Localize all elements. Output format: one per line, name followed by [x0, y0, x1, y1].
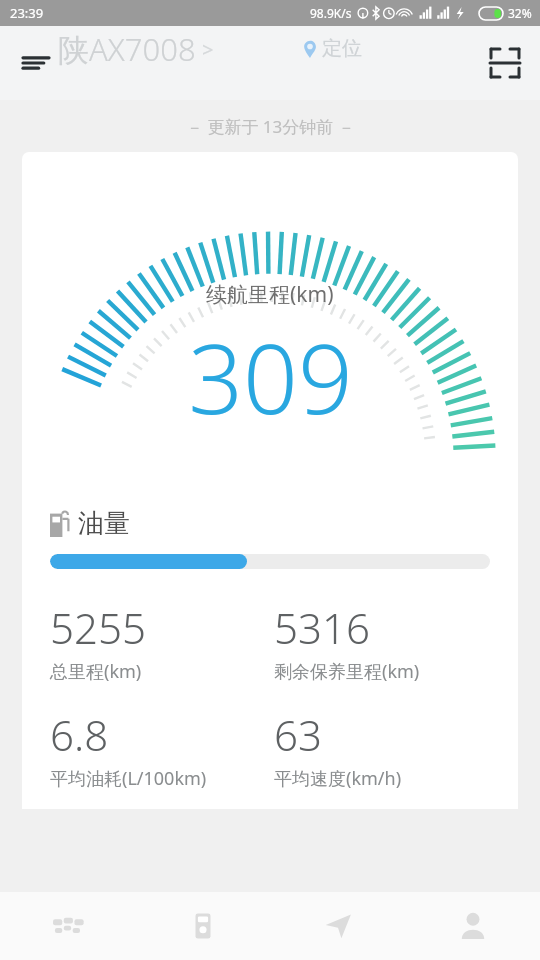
- staticText: 309: [188, 311, 353, 442]
- staticText: 98.9K/s: [310, 5, 352, 21]
- button[interactable]: Remote control: [135, 892, 270, 960]
- staticText: >: [202, 36, 214, 63]
- button[interactable]: 5316: [274, 599, 498, 684]
- staticText: 陕AX7008: [58, 28, 196, 70]
- staticText: 总里程(km): [50, 659, 142, 684]
- staticText: － 更新于 13分钟前 －: [186, 115, 355, 138]
- button[interactable]: 定位: [299, 34, 366, 63]
- staticText: 5255: [50, 599, 146, 656]
- button[interactable]: Navigation: [270, 892, 405, 960]
- staticText: 油量: [78, 507, 130, 540]
- button[interactable]: 63: [274, 706, 498, 791]
- button[interactable]: 6.8: [50, 706, 274, 791]
- staticText: 续航里程(km): [206, 280, 334, 309]
- staticText: 平均速度(km/h): [274, 766, 402, 791]
- staticText: 32%: [508, 5, 532, 21]
- staticText: 23:39: [10, 4, 44, 22]
- staticText: 定位: [322, 36, 362, 61]
- staticText: 平均油耗(L/100km): [50, 766, 207, 791]
- staticText: 63: [274, 706, 322, 763]
- button[interactable]: Car: [0, 892, 135, 960]
- staticText: 6.8: [50, 706, 109, 763]
- button[interactable]: 5255: [50, 599, 274, 684]
- button[interactable]: Profile: [405, 892, 540, 960]
- button[interactable]: Scan QR code: [482, 40, 528, 86]
- staticText: 5316: [274, 599, 370, 656]
- button[interactable]: Menu: [14, 41, 58, 85]
- staticText: 剩余保养里程(km): [274, 659, 420, 684]
